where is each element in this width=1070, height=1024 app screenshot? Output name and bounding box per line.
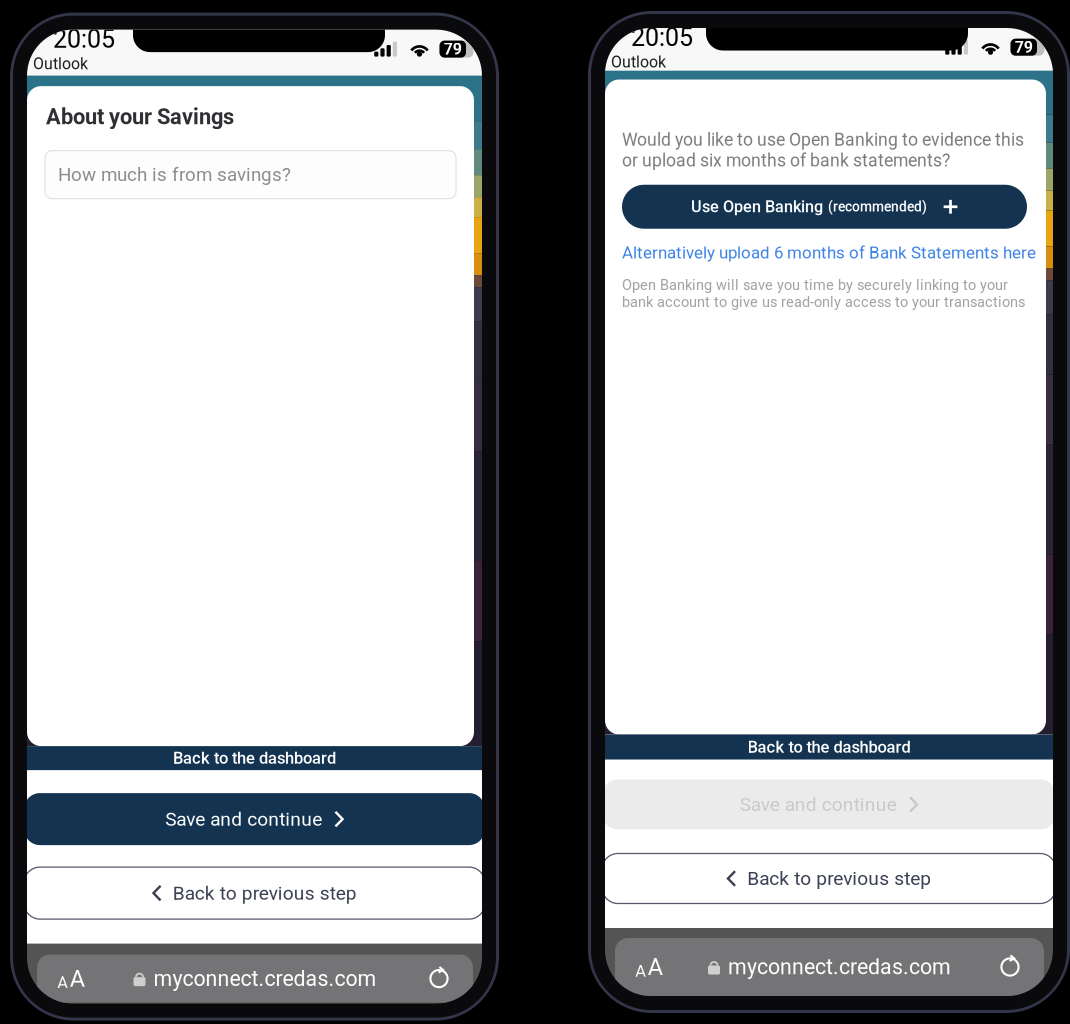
staticText: Back to the dashboard (173, 748, 336, 768)
staticText: Back to the dashboard (747, 737, 910, 757)
staticText: myconnect.credas.com (153, 966, 376, 991)
staticText: Save and continue (165, 808, 322, 830)
button[interactable]: Save and continue (27, 793, 482, 845)
button[interactable]: myconnect.credas.com (133, 966, 376, 991)
button[interactable]: Back to previous step (605, 853, 1053, 903)
button[interactable]: Back to the dashboard (605, 734, 1053, 759)
staticText: 20:05 (53, 25, 115, 54)
button[interactable]: Text size (43, 964, 99, 994)
staticText: A (635, 961, 646, 981)
staticText: A (57, 973, 68, 992)
staticText: Back to previous step (747, 867, 931, 890)
staticText: 79 (444, 40, 462, 58)
staticText: Save and continue (740, 793, 897, 816)
staticText: About your Savings (46, 104, 234, 130)
button[interactable]: Outlook (605, 53, 1053, 71)
button[interactable]: Alternatively upload 6 months of Bank St… (605, 243, 1036, 263)
button[interactable]: Back to the dashboard (27, 746, 482, 770)
staticText: (recommended) (828, 199, 927, 215)
button[interactable]: myconnect.credas.com (708, 954, 951, 979)
staticText: Outlook (611, 53, 666, 71)
staticText: Outlook (33, 55, 88, 73)
button[interactable]: How much is from savings? (27, 151, 474, 199)
staticText: Use Open Banking (691, 197, 823, 216)
button[interactable]: Back to previous step (27, 867, 482, 919)
button[interactable]: Outlook (27, 55, 482, 73)
button[interactable]: Text size (621, 952, 677, 982)
staticText: 20:05 (631, 23, 693, 52)
button[interactable]: Reload (982, 952, 1038, 982)
button[interactable]: Save and continue (605, 779, 1053, 829)
staticText: Open Banking will save you time by secur… (622, 277, 1025, 311)
staticText: myconnect.credas.com (728, 954, 951, 979)
button[interactable]: Reload (411, 964, 467, 994)
staticText: 79 (1015, 38, 1033, 57)
staticText: Would you like to use Open Banking to ev… (622, 129, 1024, 171)
staticText: Alternatively upload 6 months of Bank St… (622, 243, 1036, 263)
staticText: Back to previous step (173, 882, 357, 904)
button[interactable]: Use Open Banking (605, 185, 1046, 229)
staticText: A (648, 953, 663, 981)
staticText: A (70, 965, 85, 992)
staticText: How much is from savings? (58, 164, 291, 186)
